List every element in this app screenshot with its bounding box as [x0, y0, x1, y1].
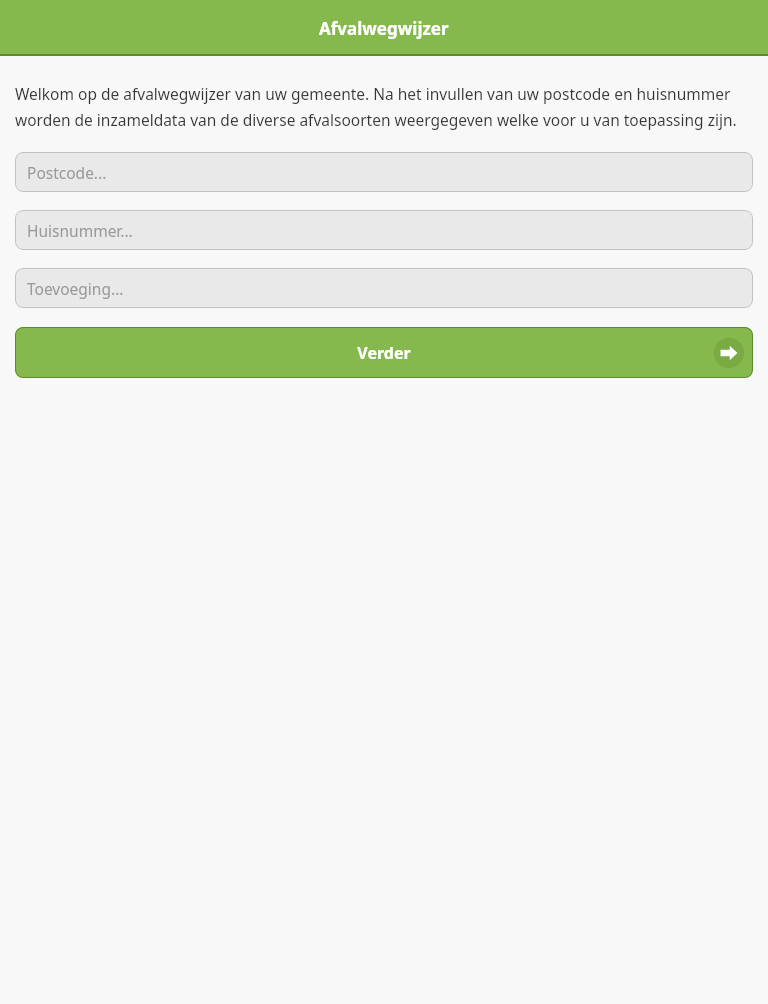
- button[interactable]: Postcode...: [15, 152, 753, 192]
- button[interactable]: Verder: [15, 327, 753, 378]
- other: Verder: [711, 335, 747, 371]
- staticText: Welkom op de afvalwegwijzer van uw gemee…: [15, 83, 753, 131]
- staticText: Toevoeging...: [27, 278, 124, 299]
- button[interactable]: Huisnummer...: [15, 210, 753, 250]
- button[interactable]: Toevoeging...: [15, 268, 753, 308]
- staticText: Afvalwegwijzer: [319, 17, 449, 40]
- staticText: Verder: [15, 342, 753, 364]
- staticText: Postcode...: [27, 162, 107, 183]
- staticText: Huisnummer...: [27, 220, 133, 241]
